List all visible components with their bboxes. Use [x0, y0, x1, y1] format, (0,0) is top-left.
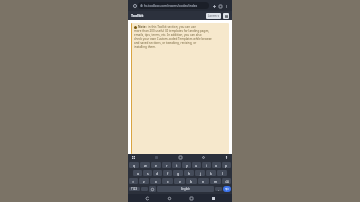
- staticText: k: [210, 171, 212, 176]
- staticText: installing them.: [134, 45, 156, 49]
- button[interactable]: .: [215, 187, 222, 191]
- button[interactable]: q: [129, 162, 139, 168]
- button[interactable]: Back: [144, 195, 150, 201]
- button[interactable]: b: [186, 178, 197, 184]
- staticText: w: [144, 163, 147, 168]
- button[interactable]: Backspace: [222, 178, 231, 184]
- button[interactable]: d: [153, 170, 162, 176]
- staticText: x: [155, 179, 157, 184]
- button[interactable]: Home: [131, 2, 138, 9]
- staticText: English: [181, 187, 190, 191]
- staticText: j: [200, 171, 201, 176]
- staticText: Lorem ▾: [208, 14, 219, 18]
- staticText: d: [156, 171, 159, 176]
- button[interactable]: k: [206, 170, 216, 176]
- button[interactable]: GIF: [154, 155, 159, 160]
- button[interactable]: Enter: [223, 186, 231, 192]
- staticText: f: [167, 171, 169, 176]
- button[interactable]: Keyboard settings: [131, 155, 136, 160]
- button[interactable]: u: [192, 162, 201, 168]
- button[interactable]: g: [173, 170, 183, 176]
- button[interactable]: Voice input: [224, 155, 229, 160]
- button[interactable]: z: [139, 178, 149, 184]
- button[interactable]: Emoji: [149, 186, 156, 192]
- button[interactable]: Menu: [223, 13, 229, 19]
- staticText: in this Toolkit section, you can use: [148, 25, 196, 29]
- button[interactable]: y: [182, 162, 191, 168]
- staticText: ⌫: [225, 180, 229, 183]
- staticText: o: [215, 163, 218, 168]
- staticText: hc.toolbox.com/rooms/codex/index: [144, 4, 207, 8]
- button[interactable]: Settings: [201, 155, 206, 160]
- staticText: p: [225, 163, 228, 168]
- button[interactable]: h: [184, 170, 194, 176]
- button[interactable]: New tab: [211, 3, 217, 9]
- staticText: h: [188, 171, 191, 176]
- button[interactable]: n: [198, 178, 209, 184]
- staticText: s: [147, 171, 149, 176]
- staticText: more than 200 useful UI templates for la…: [134, 29, 210, 33]
- staticText: r: [166, 163, 168, 168]
- button[interactable]: a: [133, 170, 142, 176]
- button[interactable]: i: [202, 162, 211, 168]
- staticText: Note:: [138, 25, 147, 29]
- button[interactable]: w: [140, 162, 150, 168]
- staticText: a: [137, 171, 139, 176]
- staticText: Toolkit: [131, 13, 144, 18]
- button[interactable]: f: [163, 170, 172, 176]
- button[interactable]: hc.toolbox.com/rooms/codex/index: [138, 2, 209, 9]
- button[interactable]: x: [150, 178, 161, 184]
- staticText: q: [133, 163, 136, 168]
- button[interactable]: s: [143, 170, 152, 176]
- button[interactable]: Home: [166, 195, 172, 201]
- button[interactable]: ,: [141, 187, 148, 191]
- button[interactable]: Clipboard: [178, 155, 183, 160]
- button[interactable]: j: [195, 170, 205, 176]
- staticText: l: [222, 171, 223, 176]
- button[interactable]: Shift: [129, 178, 138, 184]
- button[interactable]: o: [212, 162, 221, 168]
- button[interactable]: t: [172, 162, 181, 168]
- button[interactable]: r: [162, 162, 171, 168]
- staticText: b: [190, 179, 193, 184]
- staticText: check your own Custom-coded Templates wh…: [134, 37, 212, 41]
- staticText: i: [206, 163, 207, 168]
- staticText: e: [155, 163, 157, 168]
- button[interactable]: Lorem ▾: [206, 13, 221, 19]
- button[interactable]: p: [222, 162, 231, 168]
- staticText: t: [176, 163, 178, 168]
- staticText: u: [195, 163, 198, 168]
- button[interactable]: v: [174, 178, 185, 184]
- staticText: .: [218, 187, 219, 191]
- staticText: ⇧: [132, 180, 135, 183]
- button[interactable]: c: [162, 178, 173, 184]
- staticText: emails, tips, terms, etc. In addition, y…: [134, 33, 202, 37]
- button[interactable]: Symbols: [129, 187, 140, 191]
- button[interactable]: Tabs: [217, 3, 223, 9]
- staticText: c: [167, 179, 169, 184]
- button[interactable]: English: [157, 186, 214, 192]
- staticText: n: [202, 179, 205, 184]
- staticText: g: [177, 171, 180, 176]
- staticText: v: [179, 179, 181, 184]
- button[interactable]: m: [210, 178, 221, 184]
- button[interactable]: e: [151, 162, 161, 168]
- staticText: y: [186, 163, 188, 168]
- staticText: ?123: [131, 187, 138, 191]
- button[interactable]: l: [217, 170, 227, 176]
- staticText: m: [214, 179, 218, 184]
- staticText: z: [143, 179, 145, 184]
- button[interactable]: Recents: [188, 195, 194, 201]
- staticText: and saved sections, or tweaking, revisin…: [134, 41, 197, 45]
- button[interactable]: More options: [223, 3, 229, 9]
- button[interactable]: Close: [210, 195, 216, 201]
